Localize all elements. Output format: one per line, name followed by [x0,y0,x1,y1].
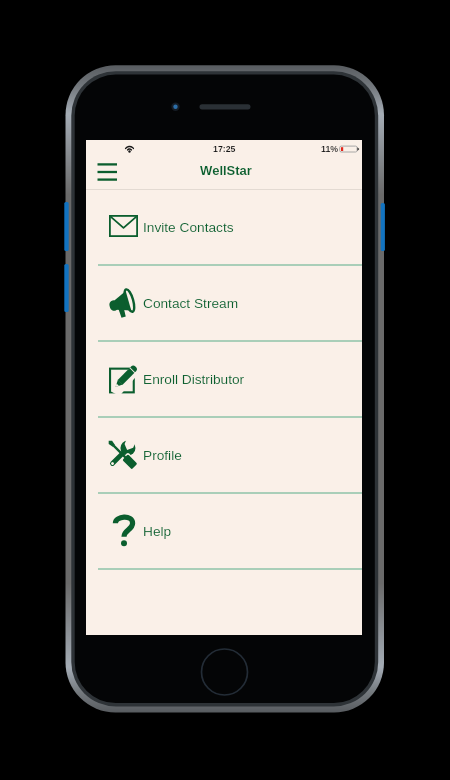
button[interactable]: Enroll Distributor [86,342,362,416]
staticText: Invite Contacts [143,220,234,235]
button[interactable]: Invite Contacts [86,190,362,264]
staticText: Profile [143,448,182,463]
staticText: Help [143,524,172,539]
button[interactable]: Help [86,494,362,568]
staticText: 17:25 [213,144,236,154]
staticText: Enroll Distributor [143,372,245,387]
button[interactable]: Contact Stream [86,266,362,340]
button[interactable]: Profile [86,418,362,492]
staticText: Contact Stream [143,296,239,311]
staticText: 11% [321,144,339,154]
staticText: WellStar [200,163,252,178]
button[interactable]: Open navigation menu [91,160,123,190]
